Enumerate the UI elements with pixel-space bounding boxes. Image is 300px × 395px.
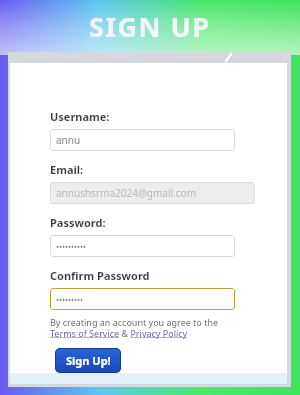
staticText: SIGN UP	[89, 8, 211, 45]
staticText: Email:	[50, 162, 84, 177]
button[interactable]: Sign Up!	[55, 348, 121, 373]
staticText: annushsrma2024@gmail.com	[56, 186, 197, 200]
button[interactable]: ••••••••••	[50, 235, 235, 257]
staticText: Sign Up!	[66, 353, 111, 368]
staticText: annu	[56, 133, 81, 147]
button[interactable]: annu	[50, 129, 235, 151]
staticText: By creating an account you agree to the …	[50, 316, 242, 339]
staticText: Confirm Password	[50, 268, 150, 283]
staticText: ••••••••••	[56, 241, 87, 252]
staticText: •••••••••	[56, 294, 84, 305]
staticText: Password:	[50, 215, 106, 230]
button[interactable]: annushsrma2024@gmail.com	[50, 182, 255, 204]
button[interactable]: Edit	[220, 52, 236, 63]
button[interactable]: •••••••••	[50, 288, 235, 310]
staticText: Username:	[50, 109, 110, 124]
